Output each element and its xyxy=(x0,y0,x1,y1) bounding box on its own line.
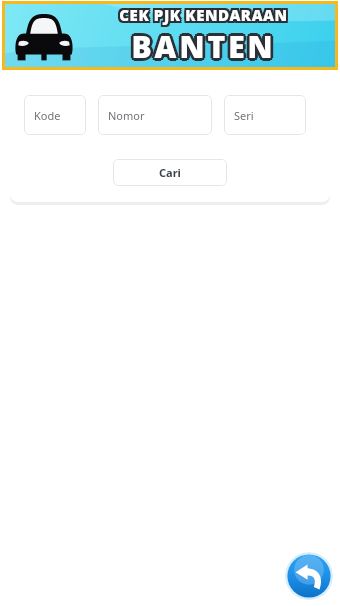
staticText: CEK PJK KENDARAAN xyxy=(121,5,290,25)
staticText: Cari xyxy=(159,165,181,180)
staticText: BANTEN xyxy=(131,23,276,64)
button[interactable]: Nomor xyxy=(98,95,212,135)
button[interactable]: Back xyxy=(285,552,333,600)
staticText: BANTEN xyxy=(131,29,276,70)
staticText: BANTEN xyxy=(134,26,279,67)
staticText: CEK PJK KENDARAAN xyxy=(121,7,290,27)
staticText: BANTEN xyxy=(128,26,273,67)
staticText: CEK PJK KENDARAAN xyxy=(119,5,288,25)
button[interactable]: Kode xyxy=(24,95,86,135)
staticText: CEK PJK KENDARAAN xyxy=(121,3,290,23)
staticText: BANTEN xyxy=(129,24,274,65)
staticText: CEK PJK KENDARAAN xyxy=(117,3,286,23)
staticText: CEK PJK KENDARAAN xyxy=(117,7,286,27)
other: Car xyxy=(11,7,77,65)
staticText: Seri xyxy=(234,108,254,123)
staticText: BANTEN xyxy=(129,28,274,69)
staticText: Nomor xyxy=(108,108,145,123)
staticText: BANTEN xyxy=(131,26,276,67)
staticText: CEK PJK KENDARAAN xyxy=(119,3,288,23)
button[interactable]: Cari xyxy=(113,159,227,186)
staticText: CEK PJK KENDARAAN xyxy=(119,7,288,27)
staticText: CEK PJK KENDARAAN xyxy=(117,5,286,25)
staticText: BANTEN xyxy=(133,28,278,69)
button[interactable]: Seri xyxy=(224,95,306,135)
staticText: BANTEN xyxy=(133,24,278,65)
staticText: Kode xyxy=(34,108,61,123)
